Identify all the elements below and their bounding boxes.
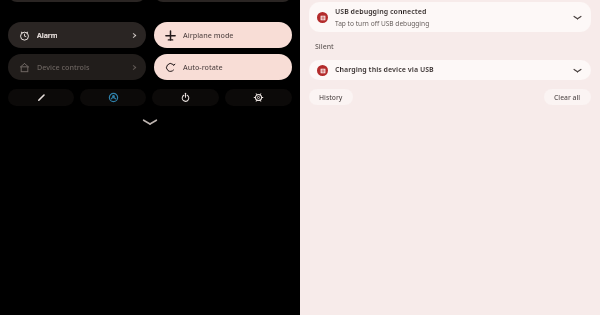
staticText: History xyxy=(319,93,343,102)
button[interactable]: Alarm xyxy=(8,22,146,48)
button[interactable]: Settings xyxy=(225,89,292,106)
button[interactable]: History xyxy=(309,89,353,105)
button[interactable]: Expand notification xyxy=(571,64,583,76)
button[interactable]: Clear all xyxy=(544,89,591,105)
staticText: Silent xyxy=(315,42,334,52)
button[interactable]: User xyxy=(80,89,146,106)
button[interactable]: Do Not Disturb xyxy=(154,0,292,2)
button[interactable]: Auto-rotate xyxy=(154,54,292,80)
button[interactable]: Expand quick settings xyxy=(0,114,300,130)
staticText: Tap to turn off USB debugging xyxy=(335,19,430,28)
button[interactable]: Device controls xyxy=(8,54,146,80)
button[interactable]: USB debugging connected xyxy=(309,2,591,32)
button[interactable]: Charging this device via USB xyxy=(309,60,591,80)
staticText: Device controls xyxy=(37,62,90,72)
staticText: USB debugging connected xyxy=(335,7,427,17)
staticText: Auto-rotate xyxy=(183,62,223,72)
staticText: Clear all xyxy=(554,93,581,102)
button[interactable]: Airplane mode xyxy=(154,22,292,48)
button[interactable]: Flashlight xyxy=(8,0,146,2)
button[interactable]: Expand notification xyxy=(571,11,583,23)
staticText: Airplane mode xyxy=(183,30,234,40)
button[interactable]: Power xyxy=(152,89,219,106)
button[interactable]: Edit tiles xyxy=(8,89,74,106)
staticText: Charging this device via USB xyxy=(335,65,434,75)
staticText: Alarm xyxy=(37,30,58,40)
